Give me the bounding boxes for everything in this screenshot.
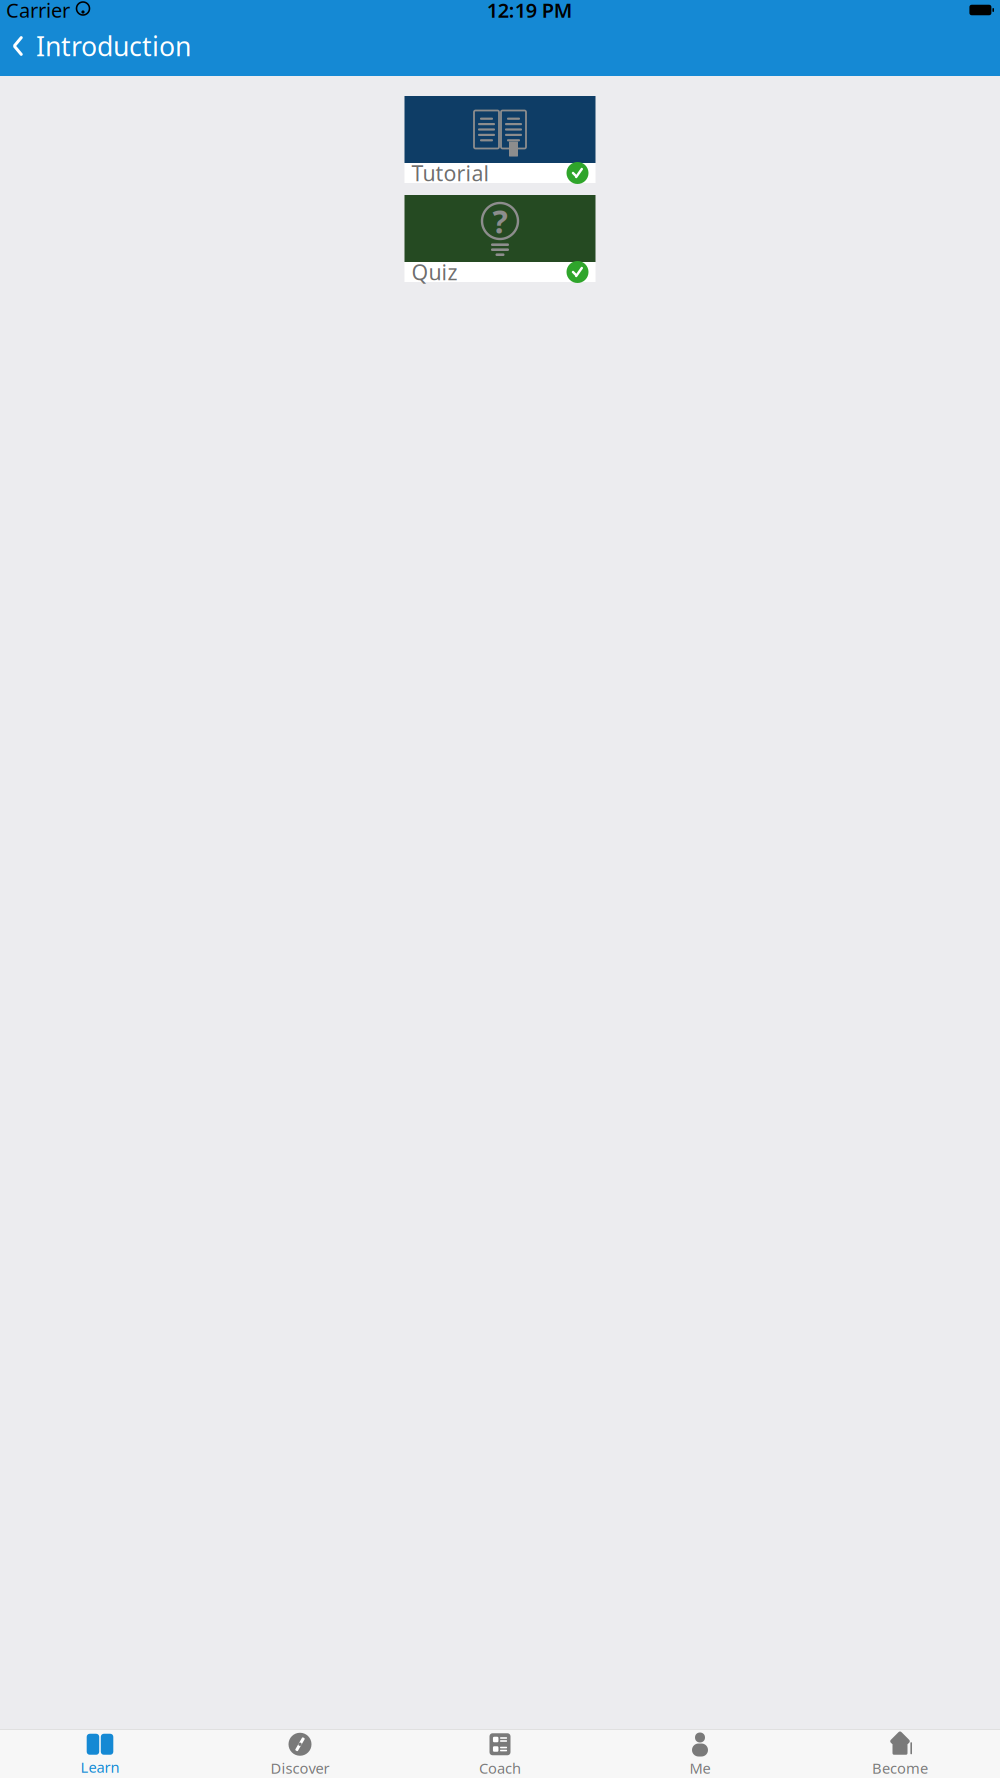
button[interactable]: Discover	[200, 1727, 400, 1778]
staticText: Tutorial	[411, 159, 489, 187]
button[interactable]: Introduction	[0, 20, 191, 72]
staticText: Quiz	[411, 258, 457, 286]
button[interactable]: Become	[800, 1727, 1000, 1778]
staticText: Me	[689, 1758, 710, 1778]
button[interactable]: Learn	[0, 1728, 200, 1778]
staticText: 12:19 PM	[487, 0, 573, 23]
staticText: Carrier	[6, 0, 70, 23]
staticText: ?	[492, 200, 507, 242]
button[interactable]: ?	[404, 195, 595, 282]
button[interactable]: Coach	[400, 1727, 600, 1778]
staticText: Learn	[80, 1757, 119, 1777]
button[interactable]: Tutorial	[404, 96, 595, 183]
staticText: Discover	[270, 1758, 329, 1778]
staticText: Introduction	[36, 28, 191, 64]
staticText: Coach	[479, 1758, 521, 1778]
staticText: Become	[872, 1758, 928, 1778]
button[interactable]: Me	[600, 1727, 800, 1778]
